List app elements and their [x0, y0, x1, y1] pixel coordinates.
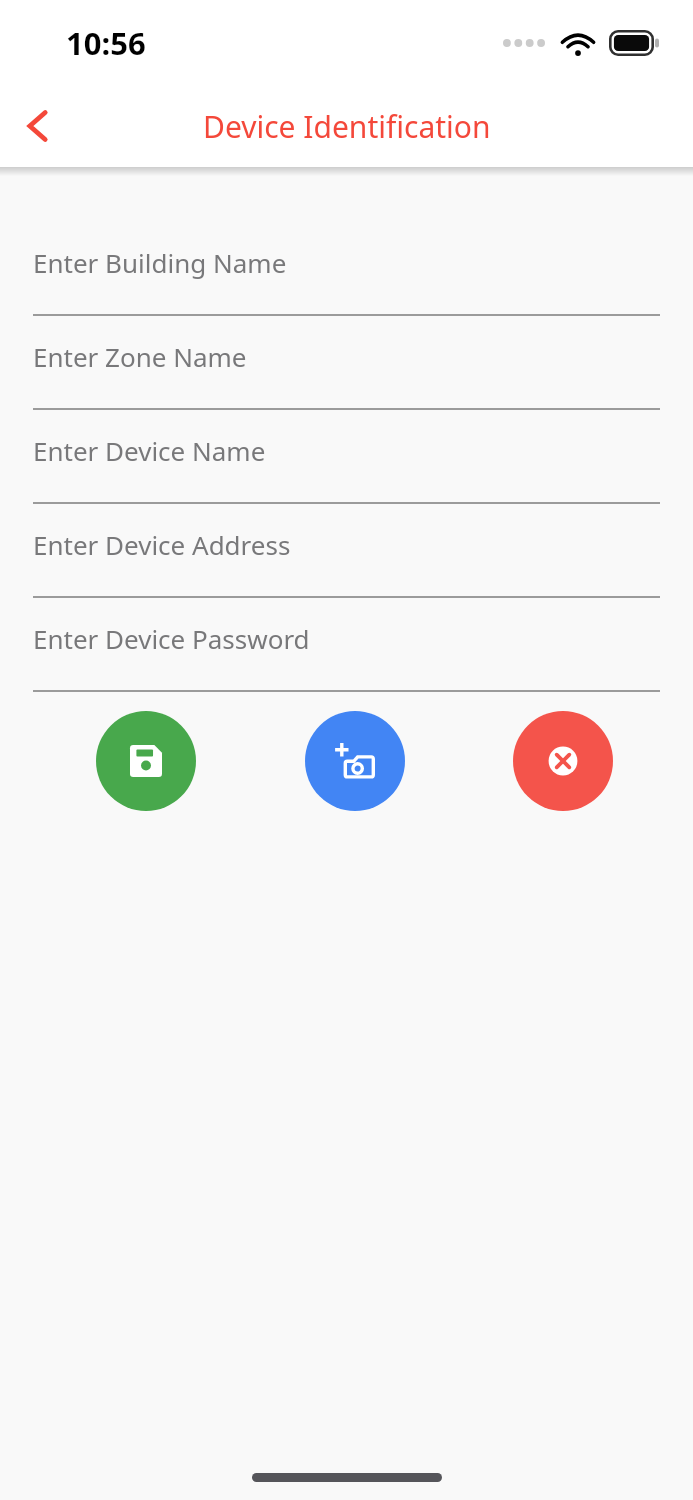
button[interactable]: Enter Zone Name [0, 316, 693, 410]
button[interactable]: Enter Building Name [0, 222, 693, 316]
staticText: Enter Device Password [33, 621, 310, 656]
button[interactable]: Enter Device Password [0, 598, 693, 692]
staticText: Device Identification [203, 106, 491, 147]
button[interactable]: Add photo [305, 711, 405, 811]
button[interactable]: Enter Device Address [0, 504, 693, 598]
button[interactable]: Cancel [513, 711, 613, 811]
staticText: Enter Zone Name [33, 339, 247, 374]
staticText: 10:56 [66, 22, 146, 64]
staticText: Enter Device Address [33, 527, 291, 562]
button[interactable]: Enter Device Name [0, 410, 693, 504]
staticText: Enter Device Name [33, 433, 266, 468]
button[interactable]: Save [96, 711, 196, 811]
button[interactable]: Back [0, 85, 76, 167]
staticText: Enter Building Name [33, 245, 287, 280]
